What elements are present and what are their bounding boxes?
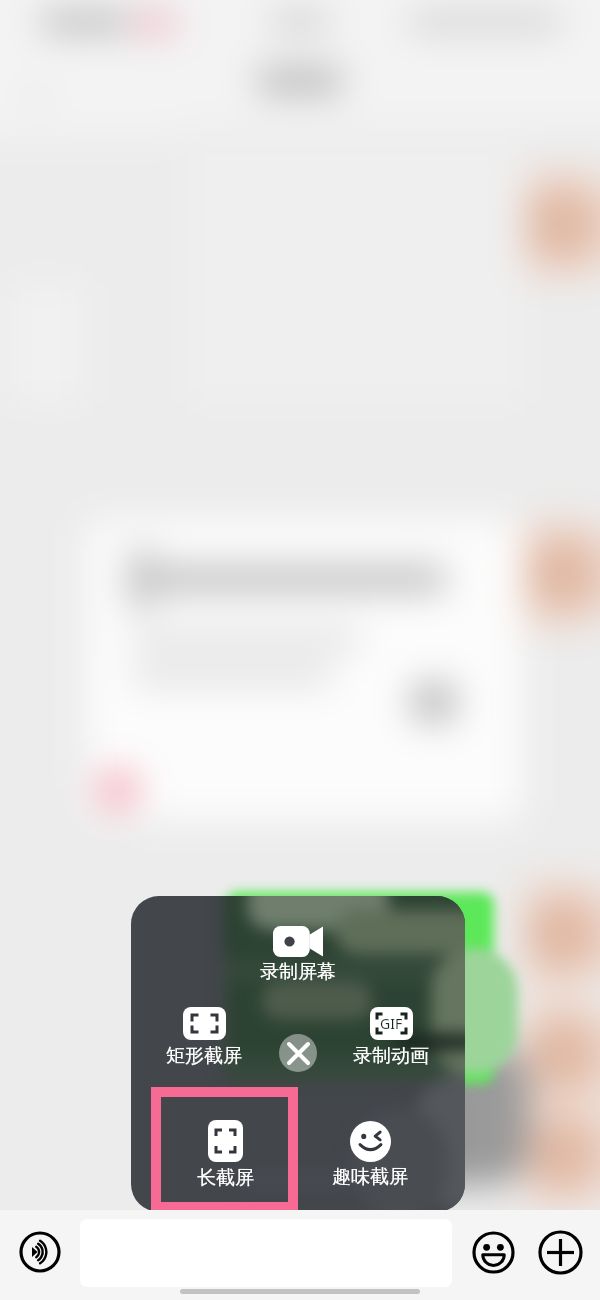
button[interactable]: More	[538, 1230, 583, 1275]
staticText: 矩形截屏	[166, 1044, 242, 1068]
button[interactable]: 录制屏幕	[238, 926, 358, 984]
button[interactable]: Close	[279, 1034, 317, 1072]
staticText: 长截屏	[197, 1166, 254, 1190]
button[interactable]: Voice input	[19, 1231, 61, 1273]
button[interactable]: GIF	[331, 1007, 451, 1068]
button[interactable]: 长截屏	[165, 1120, 285, 1190]
button[interactable]: Emoji	[472, 1231, 515, 1274]
staticText: 录制动画	[353, 1044, 429, 1068]
staticText: 趣味截屏	[332, 1165, 408, 1189]
staticText: GIF	[380, 1014, 403, 1033]
staticText: 录制屏幕	[260, 960, 336, 984]
button[interactable]	[151, 1087, 298, 1212]
button[interactable]: 趣味截屏	[310, 1121, 430, 1189]
button[interactable]: 矩形截屏	[144, 1007, 264, 1068]
